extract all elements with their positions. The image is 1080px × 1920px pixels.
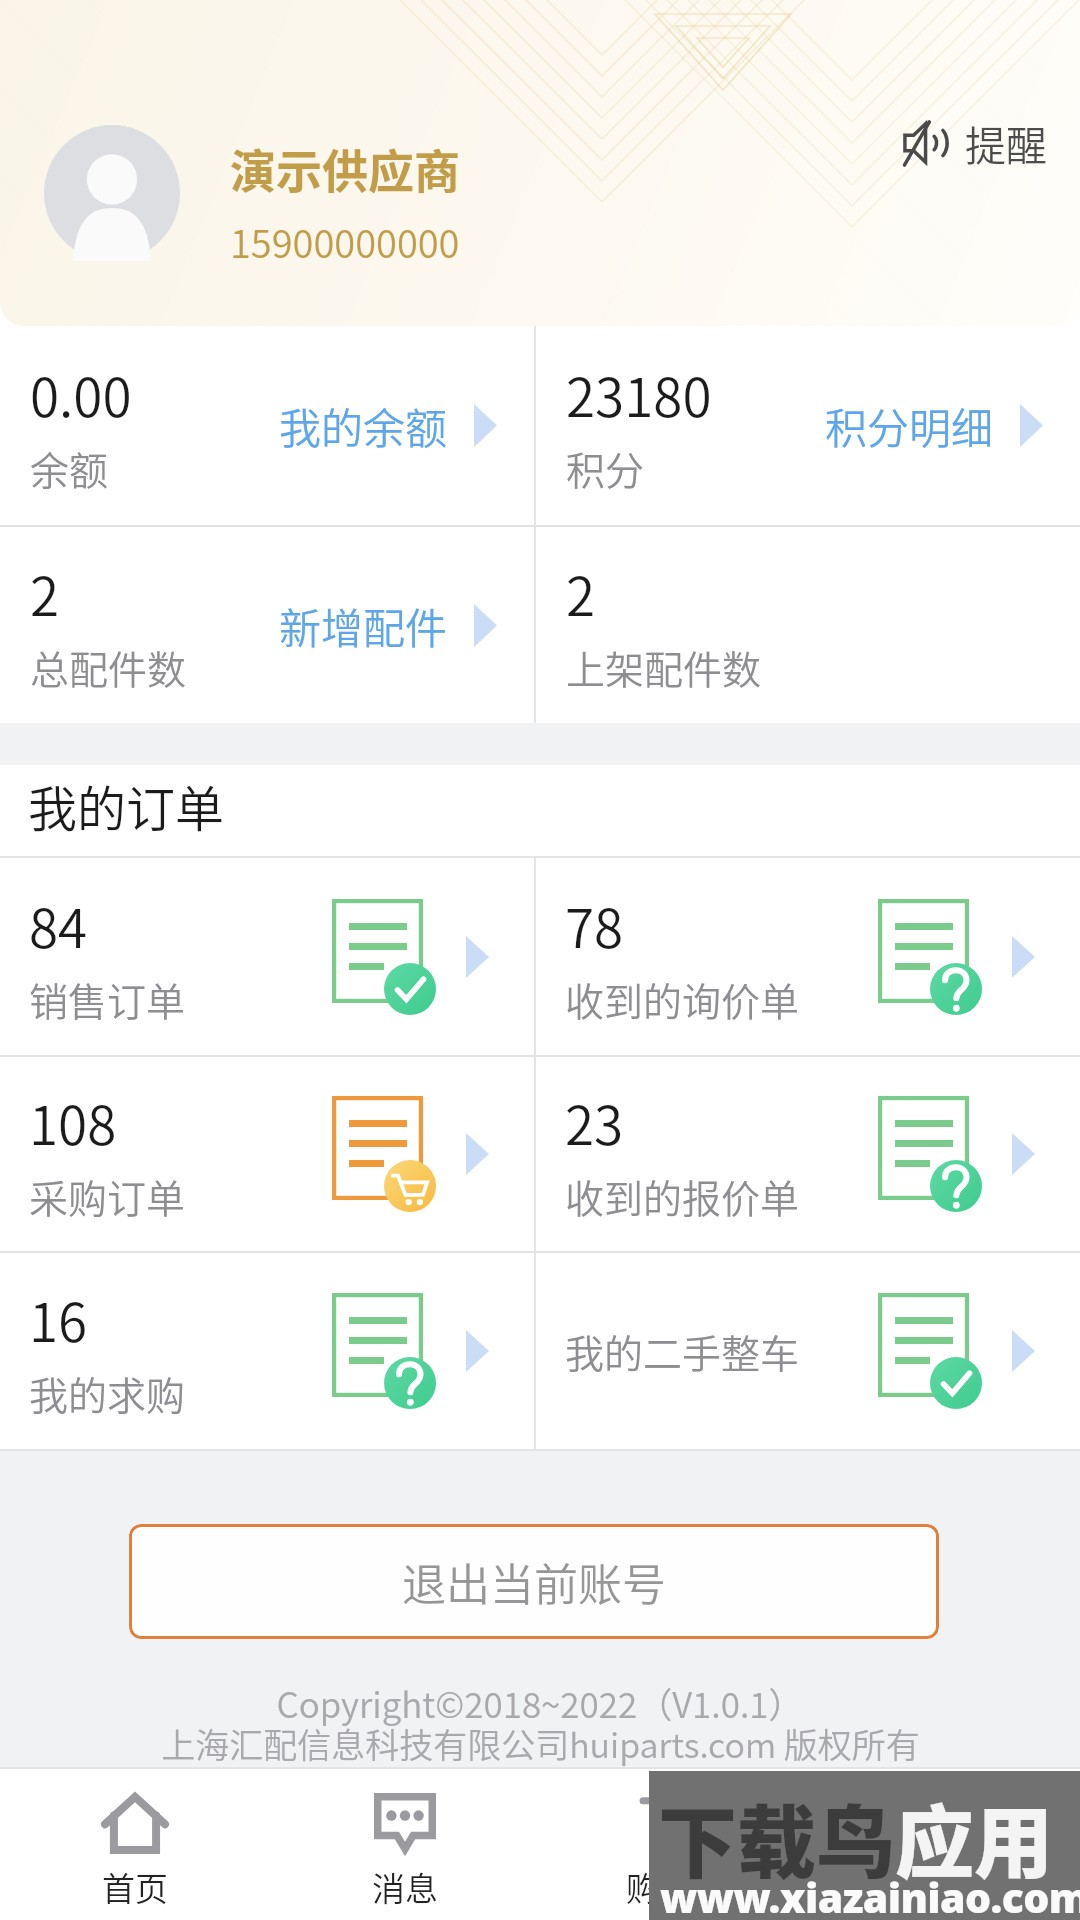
staticText: 销售订单 (29, 971, 186, 1027)
button[interactable]: 16 (0, 1253, 534, 1449)
staticText: 余额 (30, 440, 109, 496)
staticText: 108 (29, 1084, 117, 1161)
staticText: 84 (29, 887, 88, 964)
staticText: 首页 (102, 1863, 168, 1911)
button[interactable]: 购物车 (540, 1767, 810, 1920)
staticText: 上海汇配信息科技有限公司huiparts.com 版权所有 (161, 1719, 920, 1768)
staticText: 2 (566, 555, 596, 632)
button[interactable]: 提醒 (895, 105, 1055, 180)
staticText: 78 (565, 887, 624, 964)
staticText: 总配件数 (30, 639, 187, 695)
staticText: 我的求购 (29, 1365, 186, 1421)
staticText: 积分明细 (825, 395, 994, 456)
staticText: 积分 (566, 440, 645, 496)
staticText: 23 (565, 1084, 624, 1161)
staticText: 上架配件数 (566, 639, 762, 695)
button[interactable]: 消息 (270, 1767, 540, 1920)
staticText: 下载鸟 (658, 1780, 895, 1894)
staticText: 我的二手整车 (565, 1323, 800, 1379)
staticText: 收到的询价单 (565, 971, 800, 1027)
button[interactable]: 我的 (810, 1767, 1080, 1920)
button[interactable]: 23 (536, 1057, 1080, 1251)
staticText: www.xiazainiao.com (660, 1869, 1080, 1920)
button[interactable]: 退出当前账号 (129, 1524, 939, 1639)
button[interactable]: 84 (0, 858, 534, 1055)
staticText: 消息 (372, 1863, 438, 1911)
button[interactable]: 108 (0, 1057, 534, 1251)
staticText: 退出当前账号 (402, 1550, 666, 1614)
staticText: 采购订单 (29, 1168, 186, 1224)
staticText: Copyright©2018~2022（V1.0.1） (276, 1677, 804, 1728)
staticText: 提醒 (965, 113, 1047, 172)
button[interactable]: 0.00 (0, 326, 534, 525)
button[interactable]: 我的二手整车 (536, 1253, 1080, 1449)
staticText: 收到的报价单 (565, 1168, 800, 1224)
staticText: 新增配件 (279, 595, 448, 656)
staticText: 23180 (566, 356, 712, 433)
staticText: 0.00 (30, 356, 132, 433)
staticText: 16 (29, 1281, 88, 1358)
staticText: 我的订单 (28, 770, 225, 841)
button[interactable]: 2 (0, 527, 534, 723)
staticText: 15900000000 (230, 214, 460, 269)
button[interactable]: 2 (536, 527, 1080, 723)
staticText: 我的余额 (279, 395, 448, 456)
staticText: 演示供应商 (230, 135, 460, 202)
staticText: 2 (30, 555, 60, 632)
staticText: 购物车 (626, 1863, 725, 1911)
staticText: 我的 (912, 1863, 978, 1911)
button[interactable]: 78 (536, 858, 1080, 1055)
button[interactable]: 23180 (536, 326, 1080, 525)
button[interactable]: 首页 (0, 1767, 270, 1920)
staticText: 应用 (895, 1780, 1053, 1894)
